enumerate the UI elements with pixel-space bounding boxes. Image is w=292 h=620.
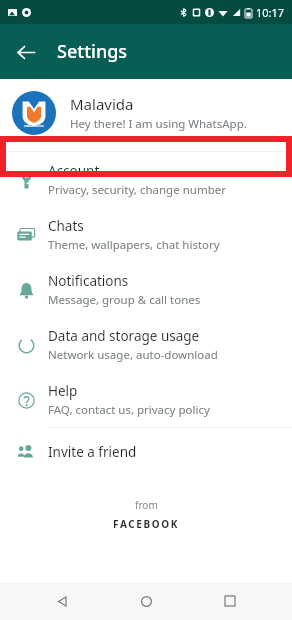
button[interactable]: Notifications	[0, 262, 292, 317]
staticText: Chats	[48, 217, 84, 235]
button[interactable]: Chats	[0, 207, 292, 262]
staticText: Network usage, auto-download	[48, 347, 218, 363]
button[interactable]: Back	[40, 582, 84, 620]
button[interactable]: malavida.com	[0, 79, 292, 147]
staticText: Notifications	[48, 272, 129, 290]
staticText: Help	[48, 382, 78, 400]
staticText: Settings	[57, 39, 128, 64]
button[interactable]: Account	[0, 152, 292, 207]
staticText: FACEBOOK	[113, 517, 179, 531]
staticText: Message, group & call tones	[48, 292, 201, 308]
staticText: Data and storage usage	[48, 327, 200, 345]
staticText: Privacy, security, change number	[48, 182, 226, 198]
button[interactable]: Invite a friend	[0, 428, 292, 476]
staticText: malavida.com	[24, 124, 44, 128]
staticText: from	[135, 498, 158, 512]
staticText: 10:17	[256, 5, 285, 20]
button[interactable]: Back	[6, 32, 46, 72]
staticText: Hey there! I am using WhatsApp.	[70, 116, 247, 132]
button[interactable]: Home	[124, 582, 168, 620]
button[interactable]: Help	[0, 372, 292, 427]
button[interactable]: Recent apps	[208, 582, 252, 620]
staticText: FAQ, contact us, privacy policy	[48, 402, 210, 418]
staticText: Account	[48, 162, 100, 180]
staticText: Invite a friend	[48, 443, 137, 461]
staticText: Malavida	[70, 94, 134, 114]
staticText: Theme, wallpapers, chat history	[48, 237, 220, 253]
button[interactable]: Data and storage usage	[0, 317, 292, 372]
